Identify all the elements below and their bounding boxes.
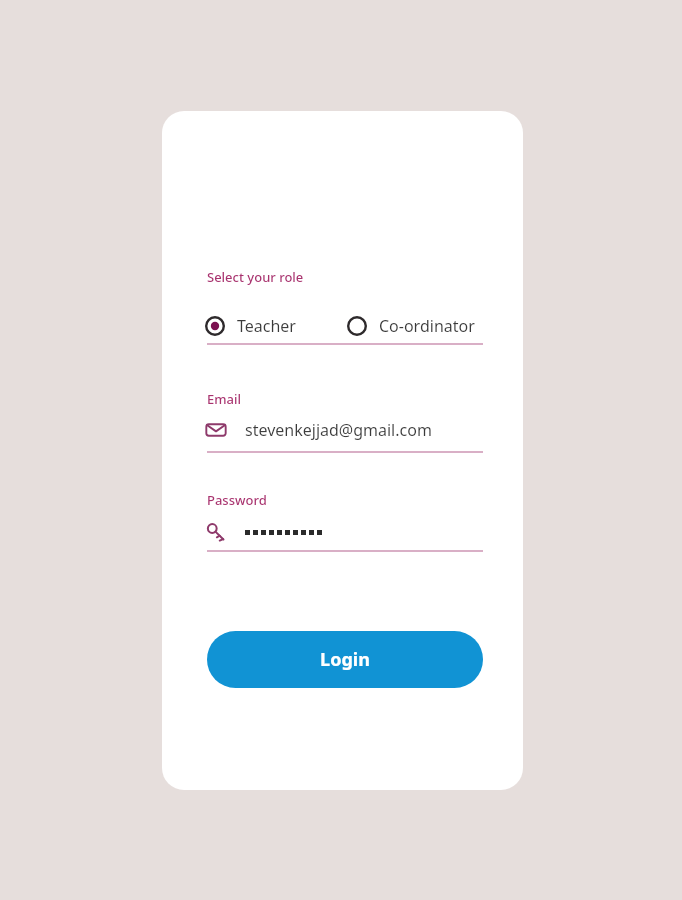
button[interactable]: Email	[205, 413, 483, 447]
staticText: Teacher	[237, 315, 296, 337]
staticText: Email	[207, 390, 242, 408]
button[interactable]: Teacher	[205, 311, 296, 341]
staticText: Select your role	[207, 268, 304, 286]
other: Password	[205, 521, 227, 543]
button[interactable]: Co-ordinator	[347, 311, 475, 341]
button[interactable]: Password	[205, 515, 483, 549]
button[interactable]: Login	[207, 631, 483, 688]
staticText: stevenkejjad@gmail.com	[245, 419, 432, 441]
other: Email	[205, 419, 227, 441]
staticText: Login	[320, 647, 370, 672]
staticText: Password	[207, 491, 267, 509]
staticText: Co-ordinator	[379, 315, 475, 337]
